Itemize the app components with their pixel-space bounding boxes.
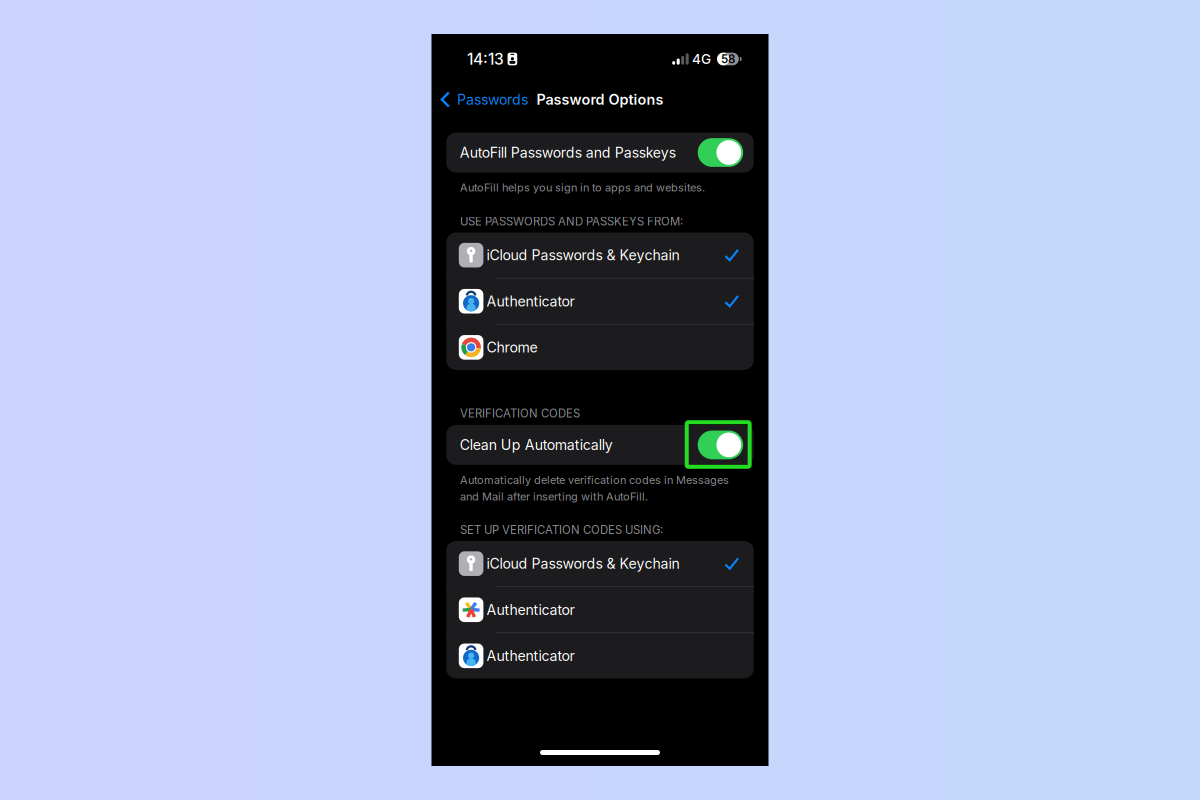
- staticText: Chrome: [487, 339, 538, 356]
- staticText: iCloud Passwords & Keychain: [487, 555, 680, 572]
- staticText: iCloud Passwords & Keychain: [487, 247, 680, 264]
- staticText: 4G: [692, 51, 711, 67]
- staticText: and Mail after inserting with AutoFill.: [460, 490, 648, 503]
- staticText: 14:13: [467, 50, 504, 68]
- button[interactable]: Clean Up Automatically: [446, 425, 754, 465]
- button[interactable]: AutoFill Passwords and Passkeys: [446, 132, 754, 172]
- staticText: Passwords: [457, 91, 528, 108]
- button[interactable]: iCloud Passwords & Keychain: [446, 541, 754, 586]
- button[interactable]: Authenticator: [446, 633, 754, 678]
- staticText: SET UP VERIFICATION CODES USING:: [460, 523, 663, 537]
- staticText: USE PASSWORDS AND PASSKEYS FROM:: [460, 215, 683, 228]
- staticText: Authenticator: [487, 647, 575, 664]
- staticText: Clean Up Automatically: [460, 436, 613, 453]
- staticText: Authenticator: [487, 601, 575, 618]
- button[interactable]: Authenticator: [446, 587, 754, 632]
- staticText: Authenticator: [487, 293, 575, 310]
- button[interactable]: Passwords: [431, 82, 534, 117]
- staticText: AutoFill Passwords and Passkeys: [460, 144, 676, 161]
- button[interactable]: Authenticator: [446, 279, 754, 324]
- staticText: Password Options: [536, 91, 663, 108]
- button[interactable]: Chrome: [446, 325, 754, 370]
- button[interactable]: iCloud Passwords & Keychain: [446, 232, 754, 278]
- staticText: VERIFICATION CODES: [460, 406, 580, 420]
- staticText: Automatically delete verification codes …: [460, 473, 729, 486]
- staticText: 58: [721, 52, 735, 66]
- staticText: AutoFill helps you sign in to apps and w…: [460, 181, 705, 194]
